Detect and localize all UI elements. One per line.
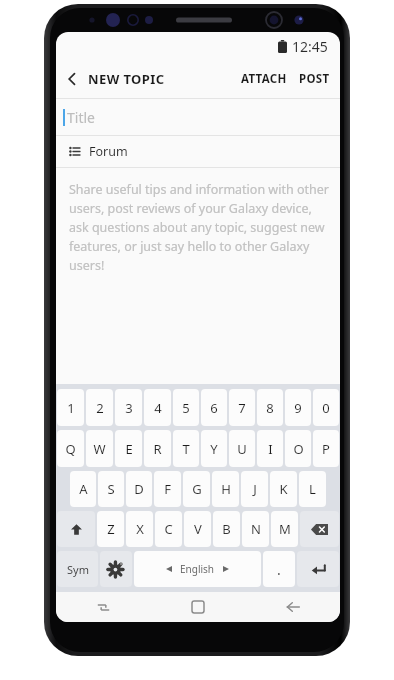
button[interactable]: . <box>263 551 295 587</box>
staticText: 2 <box>96 399 104 417</box>
button[interactable]: 4 <box>144 389 171 426</box>
button[interactable]: V <box>184 511 211 547</box>
button[interactable]: 2 <box>86 389 113 426</box>
button[interactable]: Backspace <box>300 511 339 547</box>
staticText: Q <box>65 440 76 458</box>
button[interactable]: Sym <box>57 551 98 587</box>
button[interactable]: Enter <box>297 551 339 587</box>
button[interactable]: G <box>183 471 210 507</box>
staticText: O <box>293 440 304 458</box>
staticText: V <box>194 520 202 538</box>
staticText: 6 <box>210 399 218 417</box>
button[interactable]: O <box>285 430 311 467</box>
button[interactable]: 1 <box>57 389 84 426</box>
button[interactable]: Y <box>201 430 227 467</box>
button[interactable]: X <box>126 511 153 547</box>
staticText: W <box>93 440 106 458</box>
button[interactable]: 9 <box>285 389 311 426</box>
staticText: X <box>136 520 144 538</box>
button[interactable]: Home <box>150 592 245 622</box>
staticText: M <box>279 520 291 538</box>
button[interactable]: 6 <box>201 389 227 426</box>
staticText: English <box>180 562 215 576</box>
button[interactable]: F <box>154 471 181 507</box>
staticText: Z <box>107 520 115 538</box>
button[interactable]: K <box>270 471 297 507</box>
button[interactable]: L <box>299 471 326 507</box>
staticText: 7 <box>238 399 246 417</box>
staticText: U <box>237 440 247 458</box>
staticText: D <box>134 480 144 498</box>
button[interactable]: 7 <box>229 389 255 426</box>
button[interactable]: R <box>144 430 171 467</box>
staticText: I <box>268 440 273 458</box>
staticText: H <box>221 480 231 498</box>
button[interactable]: E <box>115 430 142 467</box>
staticText: B <box>222 520 231 538</box>
button[interactable]: C <box>155 511 182 547</box>
button[interactable]: 8 <box>257 389 283 426</box>
staticText: 8 <box>266 399 274 417</box>
staticText: F <box>164 480 171 498</box>
staticText: R <box>153 440 162 458</box>
staticText: 9 <box>294 399 302 417</box>
staticText: Title <box>67 108 95 127</box>
staticText: ATTACH <box>241 71 287 87</box>
button[interactable]: M <box>271 511 298 547</box>
button[interactable]: Keyboard settings <box>100 551 132 587</box>
staticText: G <box>192 480 202 498</box>
button[interactable]: N <box>242 511 269 547</box>
button[interactable]: I <box>257 430 283 467</box>
staticText: 3 <box>125 399 133 417</box>
button[interactable]: 5 <box>173 389 199 426</box>
button[interactable]: Forum <box>56 136 340 167</box>
staticText: Sym <box>67 562 89 577</box>
staticText: P <box>322 440 330 458</box>
button[interactable]: Back <box>245 592 340 622</box>
staticText: . <box>277 560 281 579</box>
button[interactable]: Space, English <box>134 551 261 587</box>
button[interactable]: P <box>313 430 339 467</box>
button[interactable]: Q <box>57 430 84 467</box>
staticText: A <box>79 480 88 498</box>
staticText: C <box>164 520 173 538</box>
button[interactable]: D <box>126 471 152 507</box>
staticText: POST <box>299 71 330 87</box>
button[interactable]: Z <box>97 511 124 547</box>
staticText: Forum <box>89 143 128 160</box>
button[interactable]: B <box>213 511 240 547</box>
staticText: 0 <box>322 399 330 417</box>
staticText: T <box>182 440 190 458</box>
staticText: Share useful tips and information with o… <box>69 181 329 274</box>
button[interactable]: S <box>98 471 124 507</box>
button[interactable]: POST <box>294 65 340 93</box>
staticText: 1 <box>67 399 75 417</box>
button[interactable]: A <box>70 471 96 507</box>
staticText: J <box>253 480 257 498</box>
staticText: 5 <box>182 399 190 417</box>
button[interactable]: 3 <box>115 389 142 426</box>
staticText: 12:45 <box>292 37 328 56</box>
button[interactable]: H <box>212 471 239 507</box>
button[interactable]: Recents <box>56 592 150 622</box>
button[interactable]: Shift <box>57 511 95 547</box>
button[interactable]: 0 <box>313 389 339 426</box>
button[interactable]: Back <box>56 60 88 98</box>
button[interactable]: T <box>173 430 199 467</box>
staticText: Y <box>210 440 218 458</box>
staticText: NEW TOPIC <box>88 70 165 88</box>
staticText: K <box>279 480 288 498</box>
button[interactable]: ATTACH <box>234 65 294 93</box>
staticText: E <box>125 440 133 458</box>
button[interactable]: W <box>86 430 113 467</box>
button[interactable]: J <box>241 471 268 507</box>
staticText: 4 <box>154 399 162 417</box>
button[interactable]: Title <box>56 99 340 135</box>
button[interactable]: U <box>229 430 255 467</box>
staticText: N <box>251 520 261 538</box>
staticText: L <box>309 480 316 498</box>
staticText: S <box>107 480 115 498</box>
